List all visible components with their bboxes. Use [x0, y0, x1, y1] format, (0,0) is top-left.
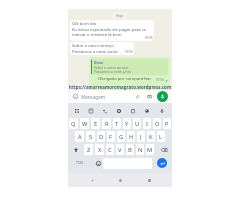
staticText: ?123 [76, 161, 83, 165]
staticText: T [115, 120, 119, 128]
staticText: J [140, 133, 142, 141]
button[interactable]: J [137, 131, 145, 142]
staticText: G [119, 133, 124, 141]
button[interactable]: Settings [115, 107, 122, 114]
button[interactable]: Y [123, 118, 131, 129]
button[interactable]: Open apps [73, 107, 80, 114]
staticText: U [135, 120, 140, 128]
button[interactable]: U [133, 118, 141, 129]
staticText: Hoje [116, 13, 124, 18]
button[interactable]: L [157, 131, 165, 142]
button[interactable]: C [106, 144, 114, 155]
button[interactable]: D [97, 131, 105, 142]
button[interactable]: N [136, 144, 144, 155]
staticText: X [98, 146, 102, 154]
button[interactable]: Voice input [158, 107, 165, 114]
staticText: K [149, 133, 153, 141]
button[interactable]: Sobre o outro serviço Passamos a noite j… [70, 42, 134, 55]
button[interactable]: Clipboard [129, 107, 136, 114]
button[interactable]: W [80, 118, 89, 129]
staticText: https://amarreamoromagrato.wordpress.com [69, 84, 172, 90]
button[interactable]: E [91, 118, 100, 129]
button[interactable]: B [126, 144, 134, 155]
staticText: M [147, 146, 153, 154]
button[interactable]: Z [84, 144, 93, 155]
button[interactable]: Olá bom dia Eu estou esperando ele pagar… [70, 20, 154, 41]
staticText: R [105, 120, 109, 128]
staticText: O [155, 120, 160, 128]
button[interactable]: Emoji [93, 157, 104, 169]
staticText: Z [87, 146, 91, 154]
button[interactable]: P [163, 118, 171, 129]
button[interactable]: ?123 [72, 157, 86, 169]
staticText: W [82, 120, 88, 128]
button[interactable]: K [147, 131, 155, 142]
staticText: A [78, 133, 82, 141]
button[interactable]: M [146, 144, 154, 155]
button[interactable]: Home [115, 175, 125, 185]
button[interactable]: S [86, 131, 95, 142]
staticText: Sobre o outro serviço Passamos a noite j… [72, 43, 118, 54]
staticText: C [108, 146, 112, 154]
button[interactable]: Shift [68, 143, 83, 156]
staticText: 07:56 [145, 36, 153, 40]
button[interactable]: H [127, 131, 135, 142]
staticText: 07:56 [156, 78, 164, 82]
button[interactable]: Deise [89, 57, 170, 90]
button[interactable]: G [117, 131, 125, 142]
button[interactable]: Themes [143, 107, 150, 114]
button[interactable]: Enter [157, 158, 167, 168]
button[interactable]: R [102, 118, 111, 129]
button[interactable]: Back [87, 175, 97, 185]
button[interactable]: Q [69, 118, 78, 129]
button[interactable]: Translate [101, 107, 108, 114]
button[interactable]: Backspace [155, 143, 172, 156]
button[interactable]: Recents [144, 175, 154, 185]
staticText: Q [71, 120, 76, 128]
staticText: L [159, 133, 163, 141]
button[interactable]: X [95, 144, 104, 155]
button[interactable]: T [113, 118, 121, 129]
staticText: Olá bom dia Eu estou esperando ele pagar… [72, 21, 146, 37]
button[interactable]: Stickers [87, 107, 94, 114]
staticText: N [138, 146, 143, 154]
staticText: H [129, 133, 134, 141]
button[interactable]: F [107, 131, 115, 142]
staticText: P [165, 120, 169, 128]
staticText: Obrigado por compartilhar [98, 76, 152, 82]
staticText: I [146, 120, 148, 128]
button[interactable]: A [75, 131, 84, 142]
staticText: B [128, 146, 132, 154]
staticText: Sobre o outro serviço Passamos a noite j… [94, 65, 131, 74]
staticText: 07:56 [125, 50, 133, 54]
button[interactable]: I [143, 118, 151, 129]
staticText: Mensagem [81, 94, 106, 100]
staticText: E [94, 120, 98, 128]
staticText: V [118, 146, 122, 154]
staticText: S [89, 133, 93, 141]
staticText: F [109, 133, 113, 141]
staticText: D [99, 133, 104, 141]
staticText: Deise [94, 60, 104, 65]
button[interactable]: Mensagem [71, 91, 154, 102]
button[interactable]: O [153, 118, 161, 129]
staticText: Y [125, 120, 129, 128]
button[interactable]: V [116, 144, 124, 155]
button[interactable]: Send voice message [157, 91, 168, 102]
